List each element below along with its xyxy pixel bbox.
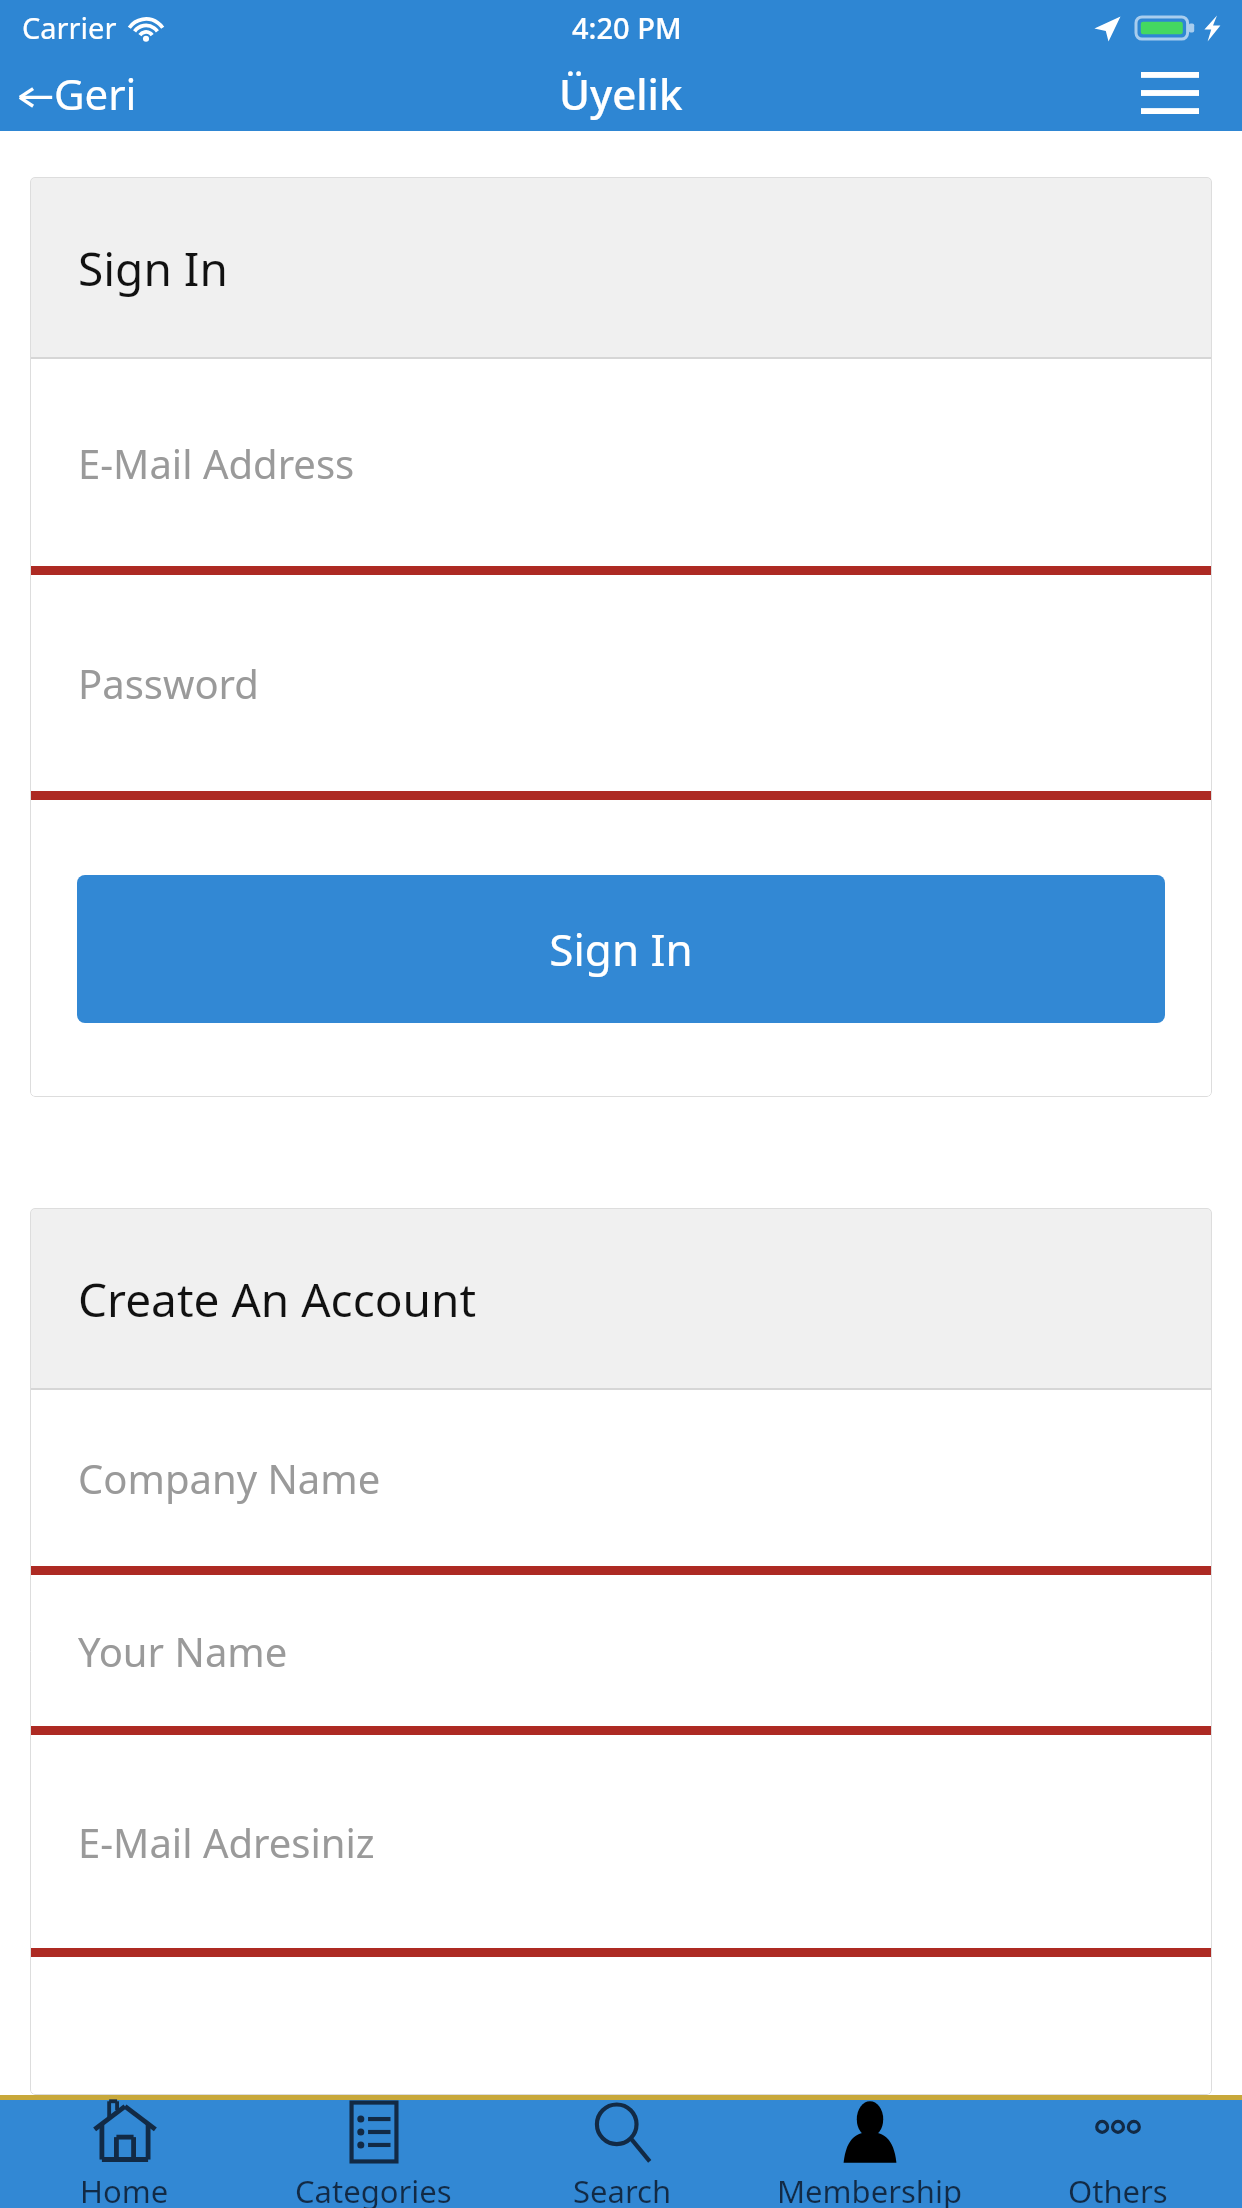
button[interactable]: Sign In: [77, 875, 1165, 1023]
button[interactable]: Membership: [746, 2100, 994, 2208]
staticText: E-Mail Adresiniz: [78, 1815, 375, 1869]
staticText: Others: [1068, 2170, 1168, 2208]
button[interactable]: Your Name: [30, 1575, 1212, 1735]
button[interactable]: Company Name: [30, 1390, 1212, 1575]
staticText: Company Name: [78, 1451, 381, 1505]
staticText: E-Mail Address: [78, 436, 355, 490]
button[interactable]: E-Mail Address: [30, 359, 1212, 575]
staticText: Create An Account: [78, 1268, 477, 1331]
staticText: Sign In: [549, 919, 693, 979]
staticText: Sign In: [78, 237, 228, 300]
staticText: Your Name: [78, 1624, 288, 1678]
staticText: Search: [573, 2170, 672, 2208]
staticText: Categories: [295, 2170, 452, 2208]
button[interactable]: Menu: [1134, 63, 1206, 123]
button[interactable]: Password: [30, 575, 1212, 800]
staticText: Geri: [54, 65, 137, 122]
staticText: Home: [80, 2170, 169, 2208]
button[interactable]: Home: [0, 2100, 249, 2208]
button[interactable]: Search: [498, 2100, 746, 2208]
staticText: Üyelik: [559, 65, 683, 122]
button[interactable]: Geri: [14, 59, 141, 128]
staticText: 4:20 PM: [572, 8, 682, 47]
staticText: Carrier: [22, 8, 117, 47]
staticText: Membership: [777, 2170, 963, 2208]
button[interactable]: E-Mail Adresiniz: [30, 1735, 1212, 1957]
button[interactable]: Others: [994, 2100, 1242, 2208]
button[interactable]: Categories: [249, 2100, 498, 2208]
staticText: Password: [78, 656, 259, 710]
